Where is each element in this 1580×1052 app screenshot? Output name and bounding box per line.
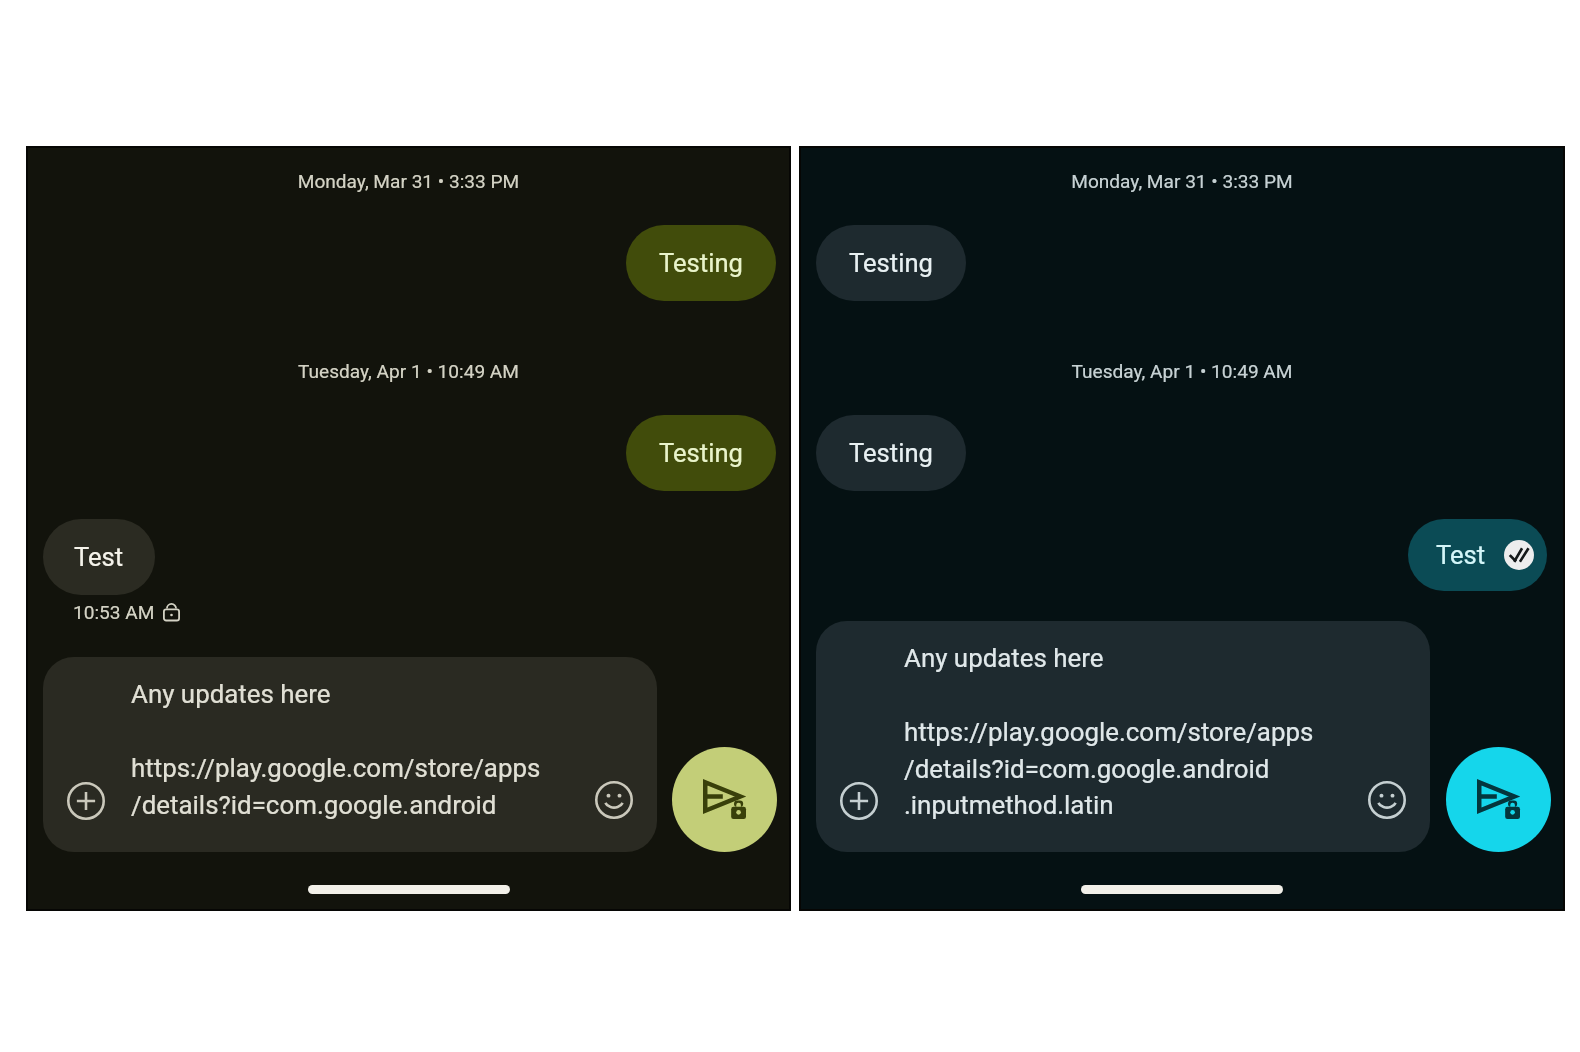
button[interactable]: Testing <box>816 415 966 491</box>
staticText: Any updates here <box>904 643 1104 673</box>
button[interactable]: Send message <box>1446 747 1551 852</box>
button[interactable]: Testing <box>626 415 776 491</box>
staticText: Test <box>1436 540 1486 570</box>
staticText: Monday, Mar 31 • 3:33 PM <box>801 170 1563 192</box>
button[interactable]: Any updates here <box>816 621 1430 852</box>
staticText: https://play.google.com/store/apps /deta… <box>904 717 1314 820</box>
button[interactable]: Add attachment <box>837 779 881 823</box>
button[interactable]: Testing <box>816 225 966 301</box>
staticText: Tuesday, Apr 1 • 10:49 AM <box>28 360 789 382</box>
button[interactable]: Emoji <box>592 778 636 822</box>
staticText: Monday, Mar 31 • 3:33 PM <box>28 170 789 192</box>
staticText: Testing <box>659 438 743 468</box>
staticText: Testing <box>849 438 933 468</box>
staticText: 10:53 AM <box>73 601 155 623</box>
staticText: https://play.google.com/store/apps /deta… <box>131 753 541 820</box>
staticText: Tuesday, Apr 1 • 10:49 AM <box>801 360 1563 382</box>
button[interactable]: Add attachment <box>64 779 108 823</box>
button[interactable]: Emoji <box>1365 778 1409 822</box>
button[interactable]: Test <box>43 519 155 595</box>
button[interactable]: Any updates here <box>43 657 657 852</box>
button[interactable]: Testing <box>626 225 776 301</box>
staticText: Any updates here <box>131 679 331 709</box>
button[interactable]: Send message <box>672 747 777 852</box>
button[interactable]: Test <box>1408 519 1547 591</box>
staticText: Testing <box>659 248 743 278</box>
staticText: Test <box>74 542 124 572</box>
staticText: Testing <box>849 248 933 278</box>
